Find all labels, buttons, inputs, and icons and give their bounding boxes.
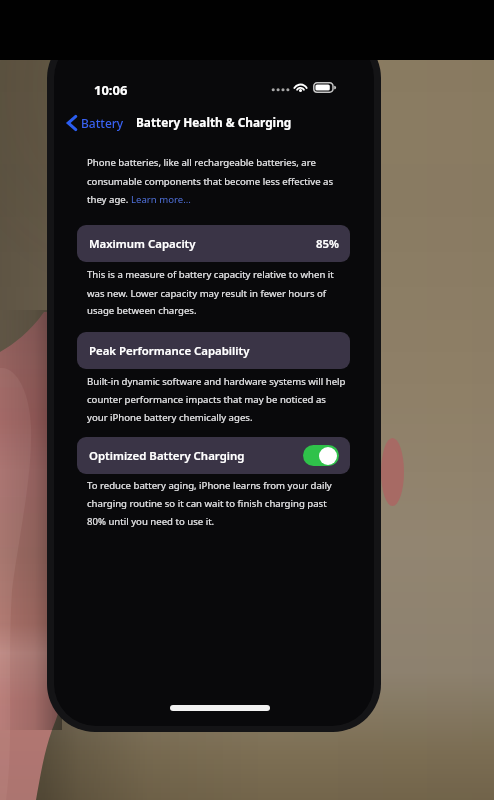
button[interactable]: Learn more… — [131, 193, 191, 206]
staticText: Built-in dynamic software and hardware s… — [87, 375, 346, 388]
staticText: consumable components that become less e… — [87, 175, 334, 188]
button[interactable]: Peak Performance Capability — [77, 332, 350, 369]
staticText: This is a measure of battery capacity re… — [87, 268, 334, 281]
staticText: 10:06 — [94, 81, 128, 99]
staticText: counter performance impacts that may be … — [87, 393, 326, 406]
staticText: Phone batteries, like all rechargeable b… — [87, 156, 316, 169]
staticText: 85% — [316, 236, 339, 252]
staticText: was new. Lower capacity may result in fe… — [87, 287, 327, 300]
button[interactable]: Optimized Battery Charging — [303, 445, 339, 466]
staticText: Optimized Battery Charging — [89, 448, 245, 464]
staticText: Maximum Capacity — [89, 236, 196, 252]
staticText: your iPhone battery chemically ages. — [87, 411, 253, 424]
button[interactable]: Optimized Battery Charging — [77, 437, 350, 474]
staticText: Battery — [81, 115, 124, 131]
staticText: Battery Health & Charging — [136, 114, 292, 130]
button[interactable]: Back to Battery — [63, 111, 128, 134]
staticText: they age. — [87, 193, 131, 206]
button[interactable]: Maximum Capacity — [77, 225, 350, 262]
staticText: usage between charges. — [87, 304, 197, 317]
staticText: charging routine so it can wait to finis… — [87, 497, 327, 510]
staticText: 80% until you need to use it. — [87, 515, 215, 528]
staticText: To reduce battery aging, iPhone learns f… — [87, 479, 332, 492]
staticText: Peak Performance Capability — [89, 343, 250, 359]
